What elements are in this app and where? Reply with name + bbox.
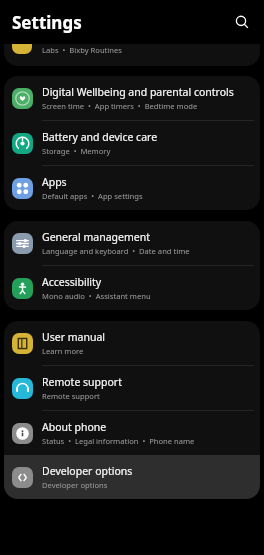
staticText: About phone [42, 420, 107, 434]
staticText: Settings [12, 11, 82, 34]
staticText: Language and keyboard • Date and time [42, 246, 190, 256]
staticText: User manual [42, 330, 105, 344]
staticText: Remote support [42, 375, 122, 389]
staticText: Storage • Memory [42, 146, 111, 156]
button[interactable]: User manual [4, 321, 260, 365]
button[interactable]: About phone [4, 411, 260, 455]
button[interactable]: Remote support [4, 366, 260, 410]
button[interactable]: Apps [4, 166, 260, 210]
staticText: Status • Legal information • Phone name [42, 436, 195, 446]
staticText: Accessibility [42, 275, 102, 289]
staticText: Developer options [42, 464, 133, 478]
button[interactable]: Digital Wellbeing and parental controls [4, 76, 260, 120]
staticText: Digital Wellbeing and parental controls [42, 85, 234, 99]
staticText: Mono audio • Assistant menu [42, 291, 151, 301]
staticText: Labs • Bixby Routines [42, 45, 122, 55]
button[interactable]: General management [4, 221, 260, 265]
staticText: Default apps • App settings [42, 191, 143, 201]
staticText: General management [42, 230, 150, 244]
staticText: Apps [42, 175, 67, 189]
staticText: Screen time • App timers • Bedtime mode [42, 101, 198, 111]
button[interactable]: Developer options [4, 455, 260, 499]
staticText: Remote support [42, 391, 100, 401]
button[interactable]: Labs • Bixby Routines [4, 44, 260, 66]
staticText: Learn more [42, 346, 84, 356]
button[interactable]: Battery and device care [4, 121, 260, 165]
button[interactable]: Accessibility [4, 266, 260, 310]
staticText: Developer options [42, 480, 108, 490]
button[interactable]: Search [228, 8, 256, 36]
staticText: Battery and device care [42, 130, 158, 144]
